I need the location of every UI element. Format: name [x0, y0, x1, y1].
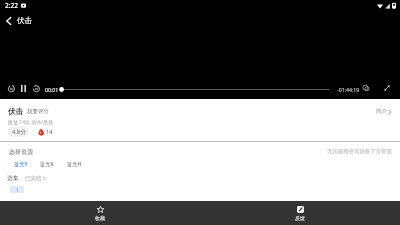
staticText: 选集 — [7, 174, 19, 182]
staticText: 蓝光H — [67, 160, 82, 167]
staticText: 伏击 — [8, 107, 23, 116]
staticText: 无法观看尝试切换下方资源 — [327, 148, 392, 155]
button[interactable]: 1 — [10, 186, 24, 193]
button[interactable]: 14 — [37, 127, 53, 137]
button[interactable]: 已完结 — [25, 175, 47, 182]
staticText: 选择资源 — [9, 148, 33, 156]
staticText: -01:44:19 — [337, 86, 360, 93]
button[interactable]: Forward 10 seconds — [30, 82, 43, 95]
staticText: 蓝光K — [40, 160, 54, 167]
button[interactable]: 4.8分 — [8, 127, 29, 137]
button[interactable]: 反馈 — [200, 201, 400, 225]
button[interactable]: Playback settings — [360, 82, 372, 94]
staticText: 伏击 — [17, 16, 32, 25]
button[interactable]: Pause — [17, 82, 30, 95]
staticText: 00:01 — [45, 86, 59, 93]
button[interactable]: Rewind 10 seconds — [5, 82, 18, 95]
staticText: 我要评分 — [27, 108, 49, 115]
staticText: 播放 14次 动作/悬疑 — [8, 119, 54, 126]
staticText: 4.8分 — [12, 128, 26, 136]
staticText: 蓝光Y — [14, 160, 28, 167]
staticText: 1 — [16, 187, 19, 193]
button[interactable]: 蓝光Y — [14, 160, 28, 167]
button[interactable]: 简介 — [376, 108, 393, 115]
staticText: 反馈 — [295, 215, 305, 221]
staticText: 已完结 — [25, 175, 42, 182]
staticText: 14 — [46, 128, 53, 136]
staticText: 2:22 — [5, 1, 18, 10]
button[interactable]: 蓝光H — [67, 160, 82, 167]
staticText: 简介 — [376, 108, 387, 115]
staticText: 收藏 — [95, 215, 105, 221]
button[interactable]: 收藏 — [0, 201, 200, 225]
button[interactable]: Back — [2, 14, 15, 27]
button[interactable]: Fullscreen — [381, 82, 393, 94]
button[interactable]: 蓝光K — [40, 160, 54, 167]
